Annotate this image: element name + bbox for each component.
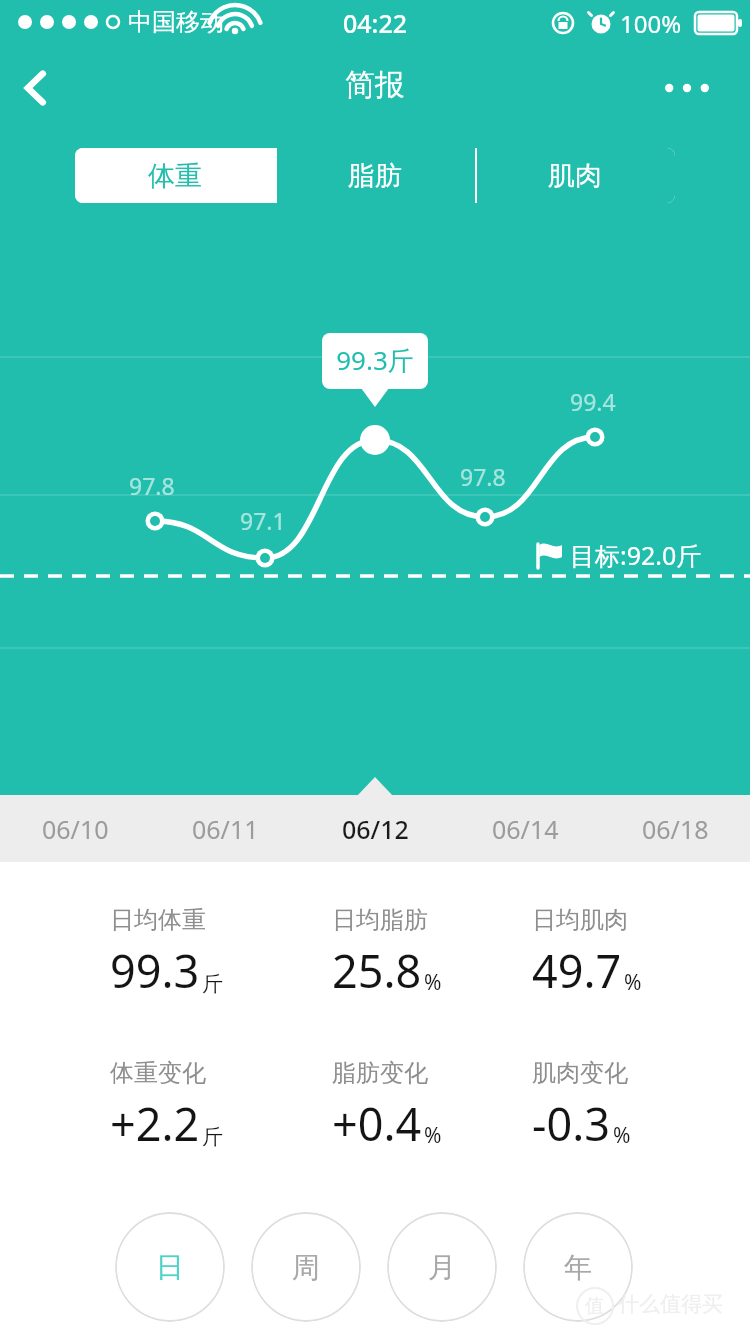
staticText: +2.2 — [110, 1093, 200, 1154]
button[interactable]: 06/14 — [450, 795, 600, 862]
button[interactable]: 周 — [251, 1212, 361, 1322]
staticText: % — [624, 968, 642, 997]
staticText: 斤 — [202, 971, 223, 997]
staticText: 99.3斤 — [322, 342, 428, 378]
button[interactable]: Back — [6, 58, 66, 118]
staticText: 脂肪 — [348, 159, 402, 193]
staticText: 体重 — [148, 159, 202, 193]
staticText: 99.3 — [110, 940, 200, 1001]
button[interactable]: 脂肪 — [275, 148, 475, 203]
staticText: 中国移动 — [128, 7, 224, 37]
staticText: 周 — [292, 1250, 320, 1285]
staticText: 日均脂肪 — [332, 905, 428, 935]
button[interactable]: More options — [656, 58, 718, 118]
staticText: 目标:92.0斤 — [570, 538, 702, 572]
staticText: % — [424, 1121, 442, 1150]
staticText: 年 — [564, 1250, 592, 1285]
staticText: -0.3 — [532, 1093, 611, 1154]
staticText: 月 — [428, 1250, 456, 1285]
staticText: 值 — [585, 1294, 604, 1318]
staticText: % — [424, 968, 442, 997]
button[interactable]: 06/12 — [300, 795, 450, 862]
button[interactable]: 06/10 — [0, 795, 150, 862]
staticText: +0.4 — [332, 1093, 422, 1154]
staticText: 06/14 — [492, 812, 559, 846]
staticText: 日均肌肉 — [532, 905, 628, 935]
staticText: 100% — [620, 7, 682, 40]
staticText: 97.1 — [240, 505, 286, 536]
staticText: 简报 — [0, 66, 750, 104]
button[interactable]: 06/18 — [600, 795, 750, 862]
button[interactable]: 年 — [523, 1212, 633, 1322]
button[interactable]: 06/11 — [150, 795, 300, 862]
staticText: 49.7 — [532, 940, 622, 1001]
staticText: 肌肉 — [548, 159, 602, 193]
button[interactable]: 肌肉 — [475, 148, 675, 203]
staticText: 25.8 — [332, 940, 422, 1001]
staticText: 97.8 — [460, 461, 506, 492]
staticText: % — [613, 1121, 631, 1150]
staticText: 06/11 — [192, 812, 259, 846]
button[interactable]: 月 — [387, 1212, 497, 1322]
staticText: 06/12 — [342, 812, 409, 846]
staticText: 日 — [156, 1250, 184, 1285]
staticText: 体重变化 — [110, 1058, 206, 1088]
staticText: 99.4 — [570, 386, 616, 417]
staticText: 斤 — [202, 1124, 223, 1150]
staticText: 06/10 — [42, 812, 109, 846]
staticText: 肌肉变化 — [532, 1058, 628, 1088]
staticText: 什么值得买 — [618, 1291, 723, 1317]
staticText: 06/18 — [642, 812, 709, 846]
staticText: 04:22 — [0, 6, 750, 40]
staticText: 日均体重 — [110, 905, 206, 935]
staticText: 97.8 — [129, 470, 175, 501]
staticText: 脂肪变化 — [332, 1058, 428, 1088]
button[interactable]: 体重 — [75, 148, 275, 203]
button[interactable]: 日 — [115, 1212, 225, 1322]
